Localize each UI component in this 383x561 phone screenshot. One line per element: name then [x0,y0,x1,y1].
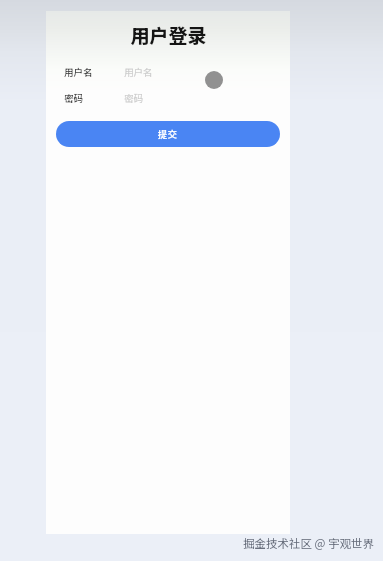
staticText: 密码 [64,91,84,105]
button[interactable]: 用户名 [64,60,204,84]
staticText: 提交 [158,127,178,141]
button[interactable]: 头像 [205,71,223,89]
staticText: 密码 [124,91,144,105]
staticText: 用户名 [124,65,153,79]
staticText: 用户登录 [130,21,207,49]
button[interactable]: 提交 [56,121,280,147]
button[interactable]: 密码 [64,86,204,110]
staticText: 用户名 [64,65,93,79]
staticText: 掘金技术社区 @ 宇观世界 [243,535,375,552]
